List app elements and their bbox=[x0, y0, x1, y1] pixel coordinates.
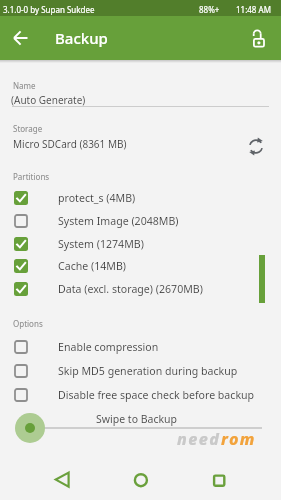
button[interactable] bbox=[240, 24, 268, 52]
button[interactable] bbox=[205, 466, 233, 494]
staticText: Micro SDCard (8361 MB) bbox=[13, 137, 127, 151]
button[interactable]: Disable free space check before backup bbox=[0, 384, 281, 406]
staticText: Backup bbox=[55, 28, 108, 48]
staticText: Swipe to Backup bbox=[96, 412, 178, 426]
button[interactable] bbox=[48, 466, 76, 494]
button[interactable]: System (1274MB) bbox=[0, 233, 281, 255]
staticText: Name bbox=[13, 80, 36, 91]
staticText: protect_s (4MB) bbox=[58, 191, 136, 205]
button[interactable] bbox=[243, 133, 269, 159]
staticText: need bbox=[177, 428, 221, 450]
button[interactable]: System Image (2048MB) bbox=[0, 210, 281, 232]
button[interactable]: Enable compression bbox=[0, 336, 281, 358]
staticText: 88%+ bbox=[199, 4, 220, 15]
staticText: Enable compression bbox=[58, 340, 159, 354]
button[interactable] bbox=[0, 76, 281, 108]
staticText: Partitions bbox=[13, 171, 50, 182]
staticText: Options bbox=[13, 318, 43, 329]
button[interactable] bbox=[127, 466, 155, 494]
button[interactable] bbox=[15, 413, 45, 443]
staticText: Skip MD5 generation during backup bbox=[58, 364, 238, 378]
staticText: 3.1.0-0 by Supan Sukdee bbox=[3, 4, 95, 15]
staticText: System (1274MB) bbox=[58, 237, 144, 251]
staticText: rom bbox=[221, 428, 256, 450]
button[interactable]: Cache (14MB) bbox=[0, 255, 281, 277]
staticText: Disable free space check before backup bbox=[58, 388, 255, 402]
staticText: System Image (2048MB) bbox=[58, 214, 179, 228]
button[interactable]: Data (excl. storage) (2670MB) bbox=[0, 278, 281, 300]
button[interactable]: Skip MD5 generation during backup bbox=[0, 360, 281, 382]
staticText: 11:48 AM bbox=[236, 4, 271, 15]
button[interactable]: protect_s (4MB) bbox=[0, 187, 281, 209]
staticText: Cache (14MB) bbox=[58, 259, 126, 273]
staticText: Storage bbox=[13, 123, 43, 134]
button[interactable] bbox=[6, 24, 34, 52]
staticText: Data (excl. storage) (2670MB) bbox=[58, 282, 203, 296]
staticText: (Auto Generate) bbox=[11, 93, 86, 107]
